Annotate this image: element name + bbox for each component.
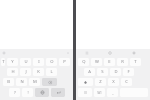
button[interactable]: P	[59, 58, 70, 66]
staticText: U	[24, 59, 28, 65]
staticText: !#1	[97, 91, 102, 95]
button[interactable]: Z	[95, 78, 106, 86]
staticText: A	[88, 69, 91, 75]
button[interactable]: S	[97, 68, 108, 76]
staticText: !	[27, 90, 29, 96]
staticText: W	[95, 59, 99, 65]
button[interactable]: Symbols	[78, 88, 92, 97]
staticText: N	[20, 79, 24, 85]
staticText: J	[25, 69, 27, 75]
button[interactable]: !#1	[94, 88, 105, 97]
button[interactable]: U	[20, 58, 31, 66]
button[interactable]: N	[16, 78, 27, 86]
staticText: ?	[14, 90, 16, 96]
button[interactable]: Voice input	[98, 49, 122, 57]
staticText: S	[101, 69, 104, 75]
button[interactable]: Apps	[76, 49, 98, 57]
staticText: Q	[82, 59, 86, 65]
staticText: I	[38, 59, 40, 65]
button[interactable]: X	[108, 78, 119, 86]
staticText: X	[112, 79, 115, 85]
button[interactable]: L	[46, 68, 57, 76]
staticText: E	[108, 59, 111, 65]
staticText: F	[127, 69, 130, 75]
button[interactable]: T	[1, 58, 5, 66]
button[interactable]: I	[33, 58, 44, 66]
button[interactable]: Y	[7, 58, 18, 66]
button[interactable]: D	[110, 68, 121, 76]
button[interactable]: M	[29, 78, 40, 86]
staticText: B	[7, 79, 10, 85]
button[interactable]: Change language	[35, 88, 49, 97]
staticText: T	[2, 59, 5, 65]
staticText: K	[37, 69, 40, 75]
staticText: ,	[112, 90, 114, 96]
staticText: D	[114, 69, 118, 75]
button[interactable]: Shift	[78, 78, 93, 86]
button[interactable]: H	[7, 68, 18, 76]
button[interactable]: Settings	[122, 49, 146, 57]
staticText: T	[134, 59, 137, 65]
button[interactable]: T	[130, 58, 141, 66]
button[interactable]: F	[123, 68, 134, 76]
button[interactable]: B	[3, 78, 14, 86]
button[interactable]: J	[20, 68, 31, 76]
button[interactable]: A	[84, 68, 95, 76]
staticText: R	[121, 59, 124, 65]
staticText: O	[50, 59, 54, 65]
staticText: C	[125, 79, 128, 85]
button[interactable]: ?	[9, 88, 20, 97]
button[interactable]: !	[22, 88, 33, 97]
staticText: M	[33, 79, 37, 85]
button[interactable]: K	[33, 68, 44, 76]
button[interactable]: O	[46, 58, 57, 66]
staticText: P	[63, 59, 66, 65]
button[interactable]: C	[121, 78, 132, 86]
button[interactable]: R	[117, 58, 128, 66]
button[interactable]: Backspace	[42, 78, 57, 86]
button[interactable]: E	[104, 58, 115, 66]
staticText: Y	[11, 59, 14, 65]
button[interactable]: Q	[78, 58, 89, 66]
staticText: H	[11, 69, 15, 75]
staticText: L	[50, 69, 53, 75]
staticText: Z	[99, 79, 102, 85]
button[interactable]: W	[91, 58, 102, 66]
button[interactable]: Enter	[51, 88, 65, 97]
